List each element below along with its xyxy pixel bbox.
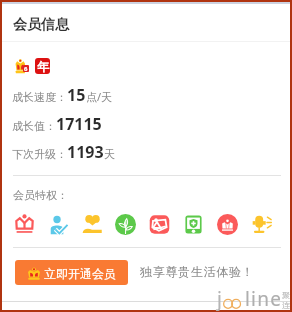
button[interactable]: Green life [108, 212, 142, 236]
staticText: line [245, 286, 283, 312]
staticText: 独享尊贵生活体验！ [140, 264, 255, 279]
button[interactable]: Health service [176, 212, 210, 236]
staticText: 天 [104, 147, 115, 161]
staticText: 15 [67, 84, 86, 106]
staticText: 年 [37, 59, 49, 74]
staticText: 连 [282, 300, 290, 310]
staticText: 1193 [67, 141, 104, 163]
staticText: 会员信息 [13, 16, 69, 34]
button[interactable]: 立即开通会员 [15, 260, 128, 285]
button[interactable]: Photo service [142, 212, 176, 236]
button[interactable]: Premium crown [210, 212, 244, 236]
staticText: j [217, 286, 222, 312]
staticText: 成长值： [12, 119, 56, 133]
button[interactable]: Care service [75, 212, 109, 236]
staticText: 会员特权： [13, 188, 68, 202]
button[interactable]: Crown privilege [7, 212, 41, 236]
staticText: 17115 [56, 113, 102, 135]
staticText: 下次升级： [12, 147, 67, 161]
staticText: 点/天 [86, 89, 113, 104]
staticText: 聚 [282, 290, 290, 300]
staticText: 6 [24, 65, 28, 72]
button[interactable]: Verified member [41, 212, 75, 236]
staticText: 立即开通会员 [44, 266, 116, 281]
staticText: 成长速度： [12, 90, 67, 104]
button[interactable]: Voice service [244, 212, 278, 236]
